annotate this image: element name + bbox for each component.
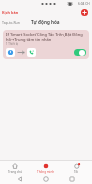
button[interactable]: Thông minh bbox=[30, 161, 61, 174]
button[interactable] bbox=[81, 9, 88, 16]
button[interactable] bbox=[69, 176, 75, 182]
staticText: 1 Thiết bị bbox=[6, 42, 19, 46]
staticText: Trang chủ bbox=[8, 170, 23, 174]
staticText: If 'Smart Socket'Công Tắc Trên,Bật Đồng bbox=[6, 32, 83, 37]
button[interactable]: If 'Smart Socket'Công Tắc Trên,Bật Đồng bbox=[3, 30, 89, 59]
staticText: Tôi bbox=[74, 170, 79, 174]
staticText: Thông minh bbox=[37, 170, 55, 174]
staticText: 6:04 CH bbox=[78, 2, 90, 6]
button[interactable]: Tôi bbox=[61, 161, 92, 174]
button[interactable]: Tự động hóa bbox=[31, 19, 60, 25]
button[interactable]: Trang chủ bbox=[0, 161, 30, 174]
staticText: hồ→Trung tâm tin nhắn bbox=[6, 37, 52, 42]
button[interactable] bbox=[43, 176, 49, 182]
staticText: 75% bbox=[67, 2, 73, 6]
button[interactable] bbox=[74, 49, 86, 56]
button[interactable] bbox=[17, 176, 23, 182]
button[interactable]: Tap-to-Run bbox=[2, 20, 20, 25]
staticText: Kịch bản bbox=[2, 10, 19, 15]
